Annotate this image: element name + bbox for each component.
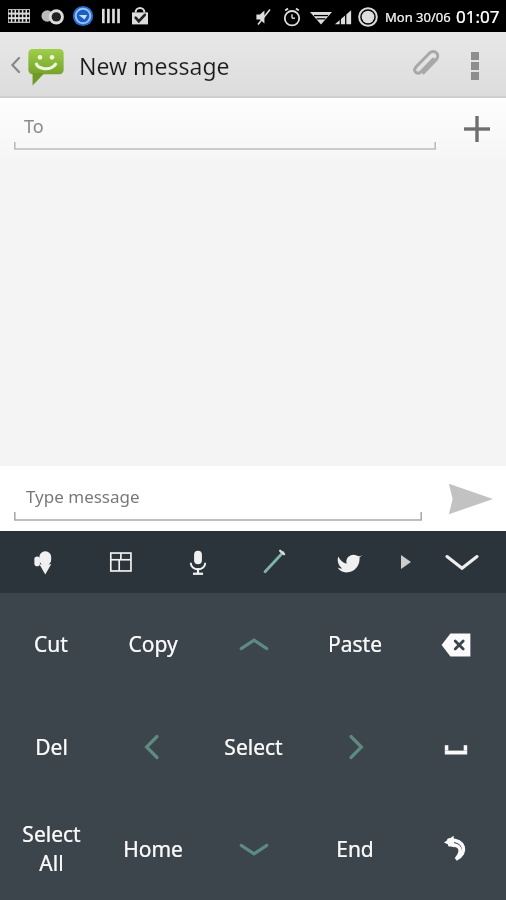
staticText: Del bbox=[35, 733, 68, 762]
button[interactable]: Attach bbox=[400, 39, 452, 91]
staticText: New message bbox=[79, 50, 230, 81]
button[interactable]: Select All bbox=[0, 798, 102, 900]
button[interactable]: More options bbox=[452, 42, 498, 88]
button[interactable]: Hide keyboard bbox=[424, 531, 500, 593]
button[interactable]: Move down bbox=[203, 798, 304, 900]
button[interactable]: Backspace bbox=[405, 593, 506, 696]
button[interactable]: Add recipient bbox=[448, 100, 506, 158]
button[interactable]: Home bbox=[102, 798, 203, 900]
staticText: Select bbox=[224, 733, 283, 762]
staticText: Mon 30/06 bbox=[385, 8, 451, 26]
button[interactable]: Cut bbox=[0, 593, 102, 696]
button[interactable]: Voice input bbox=[160, 531, 236, 593]
button[interactable]: Handwriting bbox=[6, 531, 83, 593]
button[interactable]: Type message bbox=[14, 477, 422, 521]
button[interactable]: Draw bbox=[236, 531, 312, 593]
staticText: Cut bbox=[34, 630, 68, 659]
button[interactable]: Twitter bbox=[312, 531, 388, 593]
staticText: Home bbox=[123, 835, 183, 864]
button[interactable]: Move up bbox=[203, 593, 304, 696]
button[interactable]: Space bbox=[405, 696, 506, 798]
staticText: 01:07 bbox=[456, 5, 500, 28]
button[interactable]: Undo bbox=[405, 798, 506, 900]
button[interactable]: Paste bbox=[304, 593, 405, 696]
staticText: End bbox=[336, 835, 374, 864]
button[interactable]: Move left bbox=[102, 696, 203, 798]
button[interactable]: To bbox=[14, 107, 436, 151]
button[interactable]: End bbox=[304, 798, 405, 900]
staticText: Paste bbox=[328, 630, 382, 659]
staticText: Type message bbox=[26, 485, 140, 508]
staticText: Select All bbox=[22, 820, 81, 878]
button[interactable]: Keyboard layout bbox=[83, 531, 160, 593]
staticText: To bbox=[24, 114, 44, 139]
button[interactable]: Copy bbox=[102, 593, 203, 696]
button[interactable]: Move right bbox=[304, 696, 405, 798]
button[interactable]: Select bbox=[203, 696, 304, 798]
button[interactable]: Send bbox=[436, 469, 506, 529]
staticText: Copy bbox=[128, 630, 178, 659]
button[interactable]: More bbox=[388, 531, 424, 593]
button[interactable]: Del bbox=[0, 696, 102, 798]
button[interactable]: Back bbox=[6, 38, 71, 92]
